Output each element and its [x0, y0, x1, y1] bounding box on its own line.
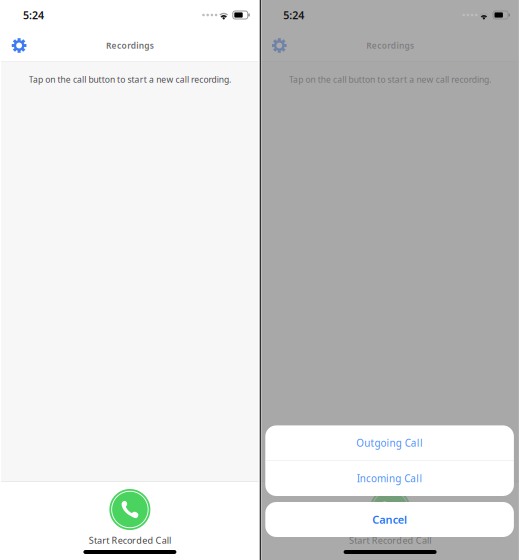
- staticText: Cancel: [372, 512, 407, 527]
- staticText: 5:24: [23, 8, 44, 22]
- button[interactable]: Incoming Call: [265, 461, 514, 496]
- staticText: Recordings: [106, 40, 154, 51]
- staticText: Tap on the call button to start a new ca…: [289, 74, 491, 85]
- staticText: Start Recorded Call: [349, 534, 431, 546]
- button[interactable]: Start Recorded Call: [70, 482, 190, 546]
- staticText: Tap on the call button to start a new ca…: [29, 74, 231, 85]
- button[interactable]: Start Recorded Call: [330, 482, 450, 546]
- staticText: 5:24: [283, 8, 304, 22]
- button[interactable]: Outgoing Call: [265, 425, 514, 460]
- button[interactable]: Settings: [262, 30, 296, 61]
- staticText: Incoming Call: [357, 472, 422, 485]
- staticText: Recordings: [366, 40, 414, 51]
- button[interactable]: Cancel: [265, 502, 514, 537]
- staticText: Start Recorded Call: [89, 534, 171, 546]
- staticText: Outgoing Call: [356, 436, 423, 450]
- button[interactable]: Settings: [2, 30, 36, 61]
